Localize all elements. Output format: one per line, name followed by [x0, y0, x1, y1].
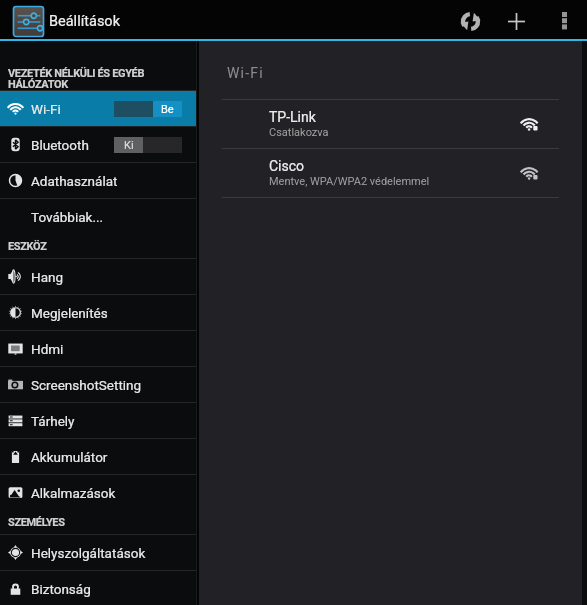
- staticText: VEZETÉK NÉLKÜLI ÉS EGYÉB HÁLÓZATOK: [8, 67, 145, 90]
- staticText: Tárhely: [31, 413, 75, 429]
- button[interactable]: Továbbiak...: [0, 199, 196, 234]
- button[interactable]: More options: [543, 3, 585, 39]
- button[interactable]: Add network: [492, 3, 540, 39]
- staticText: Beállítások: [49, 13, 120, 30]
- staticText: Csatlakozva: [269, 126, 329, 139]
- button[interactable]: Akkumulátor: [0, 439, 196, 474]
- staticText: SZEMÉLYES: [8, 516, 65, 529]
- button[interactable]: Be: [114, 101, 182, 117]
- button[interactable]: Adathasználat: [0, 163, 196, 198]
- staticText: Bluetooth: [31, 137, 89, 153]
- staticText: Adathasználat: [31, 173, 118, 189]
- staticText: Akkumulátor: [31, 449, 108, 465]
- staticText: Cisco: [269, 158, 305, 174]
- staticText: Wi-Fi: [227, 65, 264, 81]
- staticText: Wi-Fi: [31, 101, 61, 117]
- button[interactable]: ScreenshotSetting: [0, 367, 196, 402]
- staticText: Be: [161, 103, 174, 116]
- button[interactable]: Scan: [448, 3, 492, 39]
- staticText: Továbbiak...: [31, 209, 104, 225]
- button[interactable]: Settings home: [12, 5, 120, 38]
- button[interactable]: Alkalmazások: [0, 475, 196, 510]
- staticText: Mentve, WPA/WPA2 védelemmel: [269, 175, 430, 188]
- staticText: ScreenshotSetting: [31, 377, 142, 393]
- button[interactable]: Ki: [114, 137, 182, 153]
- button[interactable]: Hang: [0, 259, 196, 294]
- staticText: Ki: [124, 139, 134, 152]
- button[interactable]: Wi-Fi: [0, 91, 196, 126]
- staticText: Helyszolgáltatások: [31, 545, 146, 561]
- button[interactable]: Bluetooth: [0, 127, 196, 162]
- staticText: TP-Link: [269, 109, 316, 125]
- button[interactable]: Biztonság: [0, 571, 196, 605]
- staticText: ESZKÖZ: [8, 240, 47, 253]
- staticText: Hang: [31, 269, 64, 285]
- button[interactable]: Hdmi: [0, 331, 196, 366]
- button[interactable]: TP-Link: [199, 100, 587, 148]
- staticText: Megjelenítés: [31, 305, 108, 321]
- staticText: Hdmi: [31, 341, 64, 357]
- button[interactable]: Tárhely: [0, 403, 196, 438]
- button[interactable]: Helyszolgáltatások: [0, 535, 196, 570]
- staticText: Biztonság: [31, 581, 91, 597]
- staticText: Alkalmazások: [31, 485, 116, 501]
- button[interactable]: Cisco: [199, 149, 587, 197]
- button[interactable]: Megjelenítés: [0, 295, 196, 330]
